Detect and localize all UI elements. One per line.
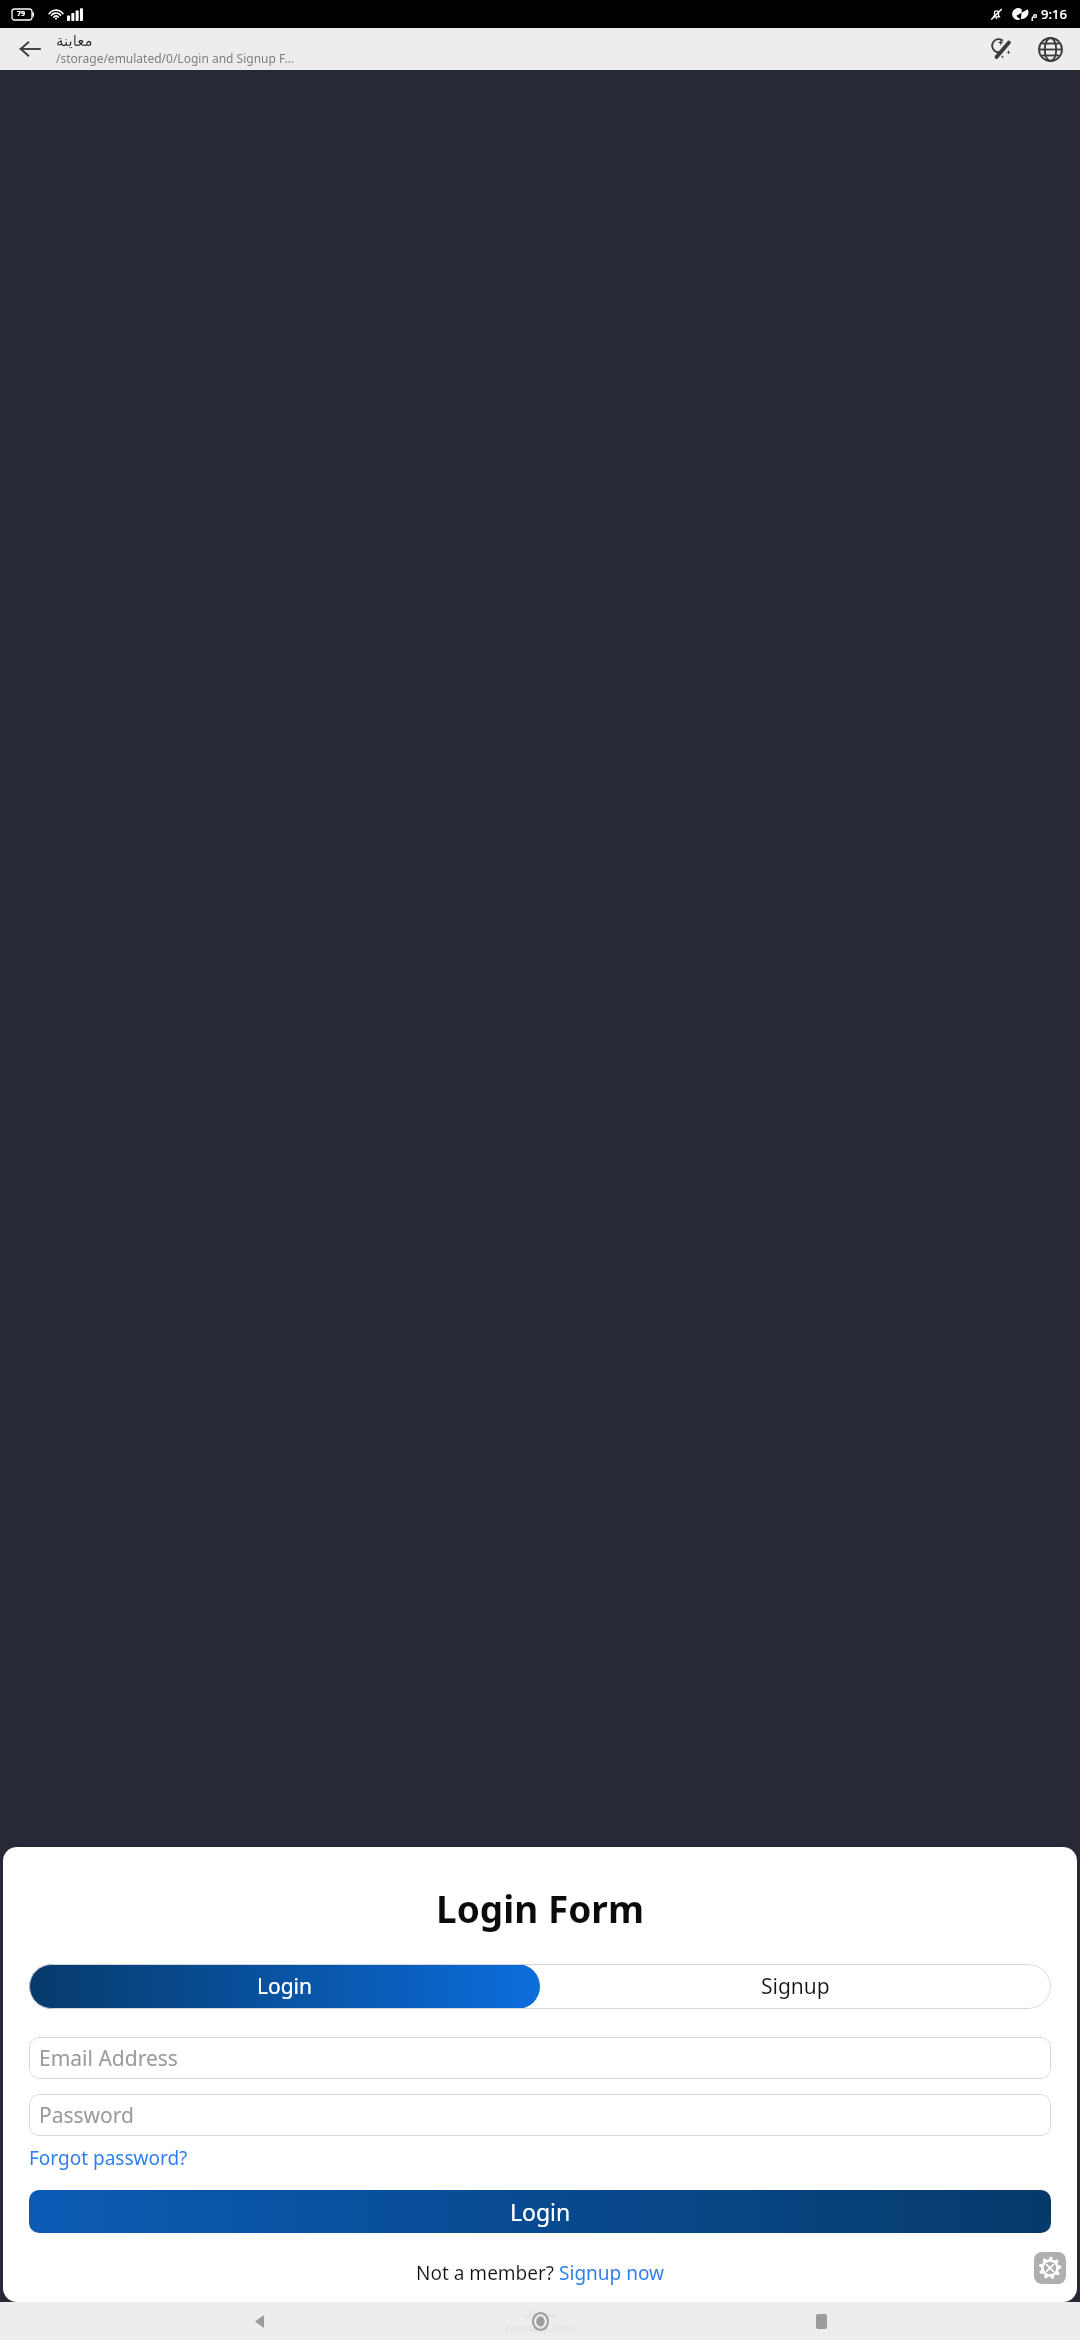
- staticText: 9:16: [1041, 5, 1067, 23]
- staticText: Login: [510, 2196, 571, 2227]
- button[interactable]: Recents: [799, 2302, 843, 2340]
- button[interactable]: Magic: [982, 29, 1022, 69]
- staticText: م: [1031, 8, 1038, 21]
- button[interactable]: Developer tools: [1034, 2252, 1066, 2284]
- button[interactable]: Login: [29, 2190, 1051, 2233]
- staticText: Forgot password?: [29, 2145, 188, 2171]
- staticText: Login: [257, 1972, 313, 2001]
- button[interactable]: Signup: [540, 1964, 1051, 2009]
- button[interactable]: Open in browser: [1030, 29, 1070, 69]
- staticText: معاينة: [56, 32, 93, 49]
- staticText: مستقل mostaql.com: [506, 2307, 574, 2335]
- button[interactable]: Email Address: [29, 2037, 1051, 2079]
- button[interactable]: Password: [29, 2094, 1051, 2136]
- staticText: /storage/emulated/0/Login and Signup F…: [56, 50, 294, 66]
- button[interactable]: Home: [518, 2302, 562, 2340]
- staticText: 79: [17, 9, 26, 19]
- staticText: Email Address: [39, 2044, 178, 2073]
- button[interactable]: Back: [237, 2302, 281, 2340]
- button[interactable]: Not a member? Signup now: [29, 2260, 1051, 2286]
- staticText: Signup: [761, 1972, 830, 2001]
- button[interactable]: Back: [10, 29, 50, 69]
- staticText: Password: [39, 2101, 134, 2130]
- staticText: Login Form: [29, 1883, 1051, 1933]
- button[interactable]: Forgot password?: [29, 2145, 188, 2171]
- button[interactable]: Login: [29, 1964, 540, 2009]
